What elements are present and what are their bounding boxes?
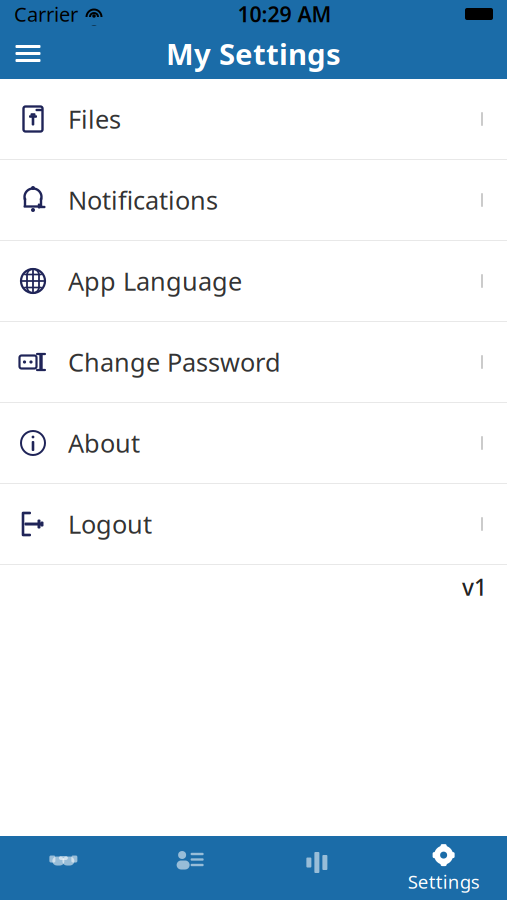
staticText: v1 (462, 572, 487, 602)
staticText: Notifications (68, 183, 218, 217)
staticText: My Settings (166, 34, 341, 73)
button[interactable]: App Language (0, 241, 507, 322)
button[interactable]: Menu (6, 31, 50, 75)
button[interactable]: Logout (0, 484, 507, 565)
button[interactable]: Notifications (0, 160, 507, 241)
staticText: 10:29 AM (237, 0, 331, 28)
staticText: Change Password (68, 345, 281, 379)
staticText: Settings (408, 869, 480, 894)
staticText: App Language (68, 264, 242, 298)
staticText: Logout (68, 507, 152, 541)
button[interactable]: Deals (0, 836, 127, 900)
button[interactable]: Files (0, 79, 507, 160)
button[interactable]: About (0, 403, 507, 484)
staticText: About (68, 426, 140, 460)
button[interactable]: Change Password (0, 322, 507, 403)
button[interactable]: Settings (380, 836, 507, 900)
button[interactable]: Reports (253, 836, 380, 900)
staticText: Carrier (14, 1, 78, 27)
button[interactable]: Contacts (127, 836, 254, 900)
staticText: Files (68, 102, 121, 136)
